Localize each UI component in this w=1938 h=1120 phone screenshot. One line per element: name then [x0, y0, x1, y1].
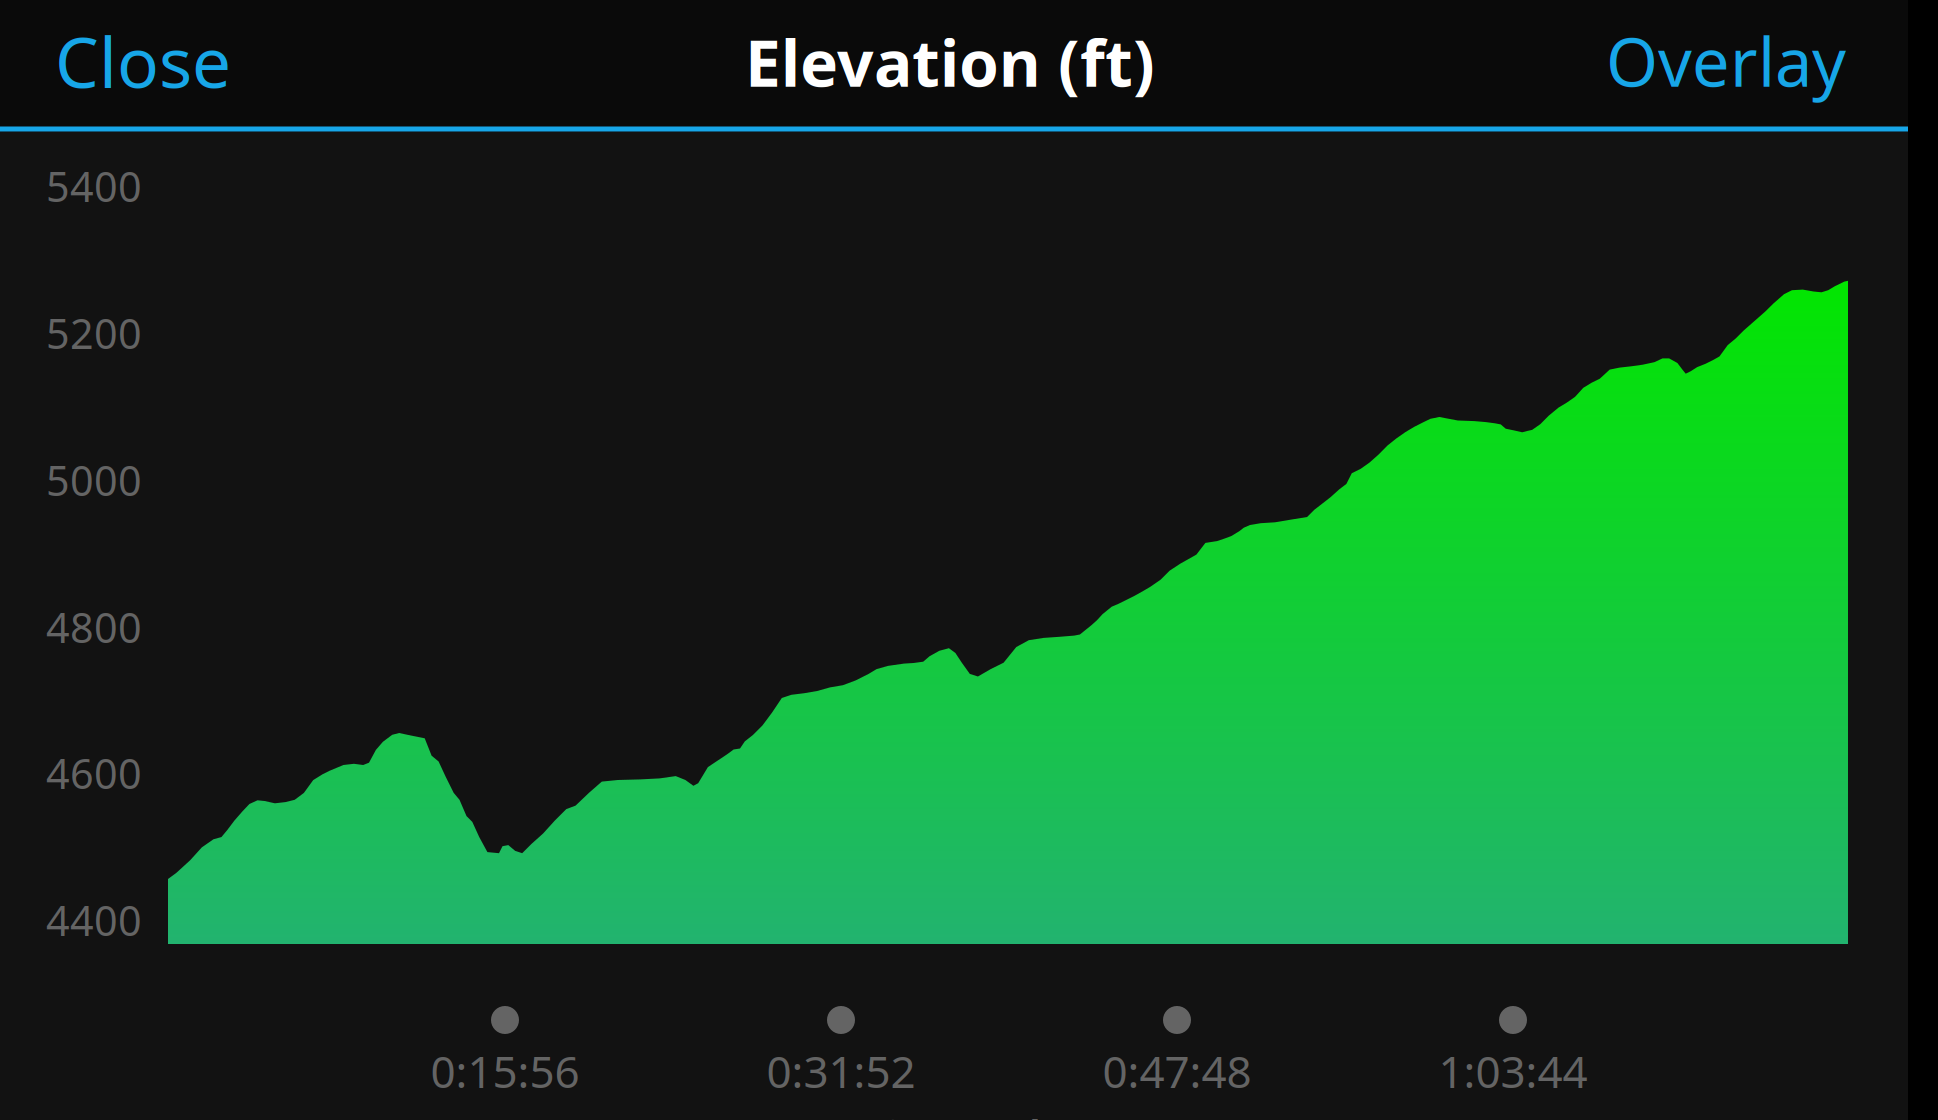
- staticText: Close: [55, 15, 231, 107]
- staticText: 4800: [46, 600, 142, 654]
- button[interactable]: Overlay: [1556, 0, 1846, 124]
- staticText: 5400: [46, 159, 142, 213]
- staticText: 0:31:52: [766, 1042, 915, 1100]
- staticText: 4400: [46, 893, 142, 947]
- staticText: 1:03:44: [1438, 1042, 1587, 1100]
- staticText: 0:47:48: [1102, 1042, 1251, 1100]
- staticText: 0:15:56: [430, 1042, 579, 1100]
- staticText: 5000: [46, 453, 142, 507]
- button[interactable]: Close: [55, 0, 285, 124]
- staticText: 5200: [46, 306, 142, 360]
- staticText: 4600: [46, 746, 142, 800]
- staticText: Overlay: [1606, 17, 1846, 105]
- staticText: Elevation (ft): [745, 19, 1155, 104]
